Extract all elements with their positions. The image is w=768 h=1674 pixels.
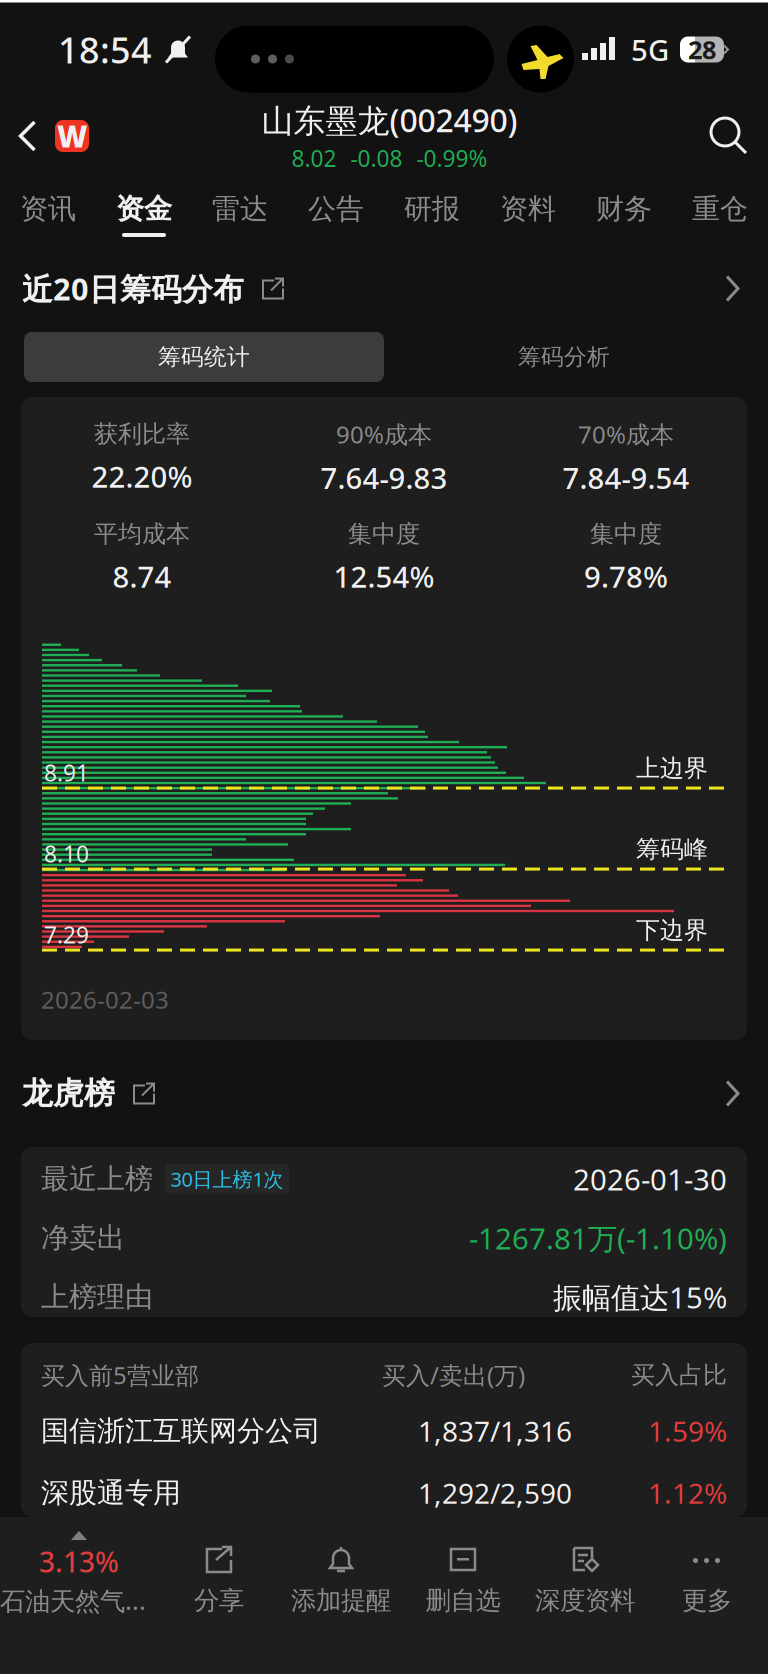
staticText: 添加提醒 [291, 1585, 391, 1616]
staticText: 公告 [308, 192, 364, 226]
staticText: 18:54 [58, 26, 152, 73]
button[interactable]: 公告 [288, 179, 384, 245]
staticText: 7.84-9.54 [562, 458, 689, 497]
staticText: 1.12% [648, 1474, 727, 1512]
button[interactable]: Back [0, 105, 55, 167]
staticText: 筹码峰 [636, 835, 708, 864]
staticText: 3.13% [39, 1543, 119, 1580]
staticText: 上边界 [636, 754, 708, 783]
button[interactable]: 财务 [576, 179, 672, 245]
button[interactable]: 资料 [480, 179, 576, 245]
staticText: 7.64-9.83 [320, 458, 447, 497]
staticText: 振幅值达15% [553, 1277, 727, 1316]
button[interactable]: 更多 [646, 1517, 768, 1674]
staticText: 资料 [500, 192, 556, 226]
staticText: 筹码分析 [518, 343, 610, 371]
staticText: 资金 [116, 192, 172, 226]
staticText: 删自选 [425, 1585, 500, 1616]
staticText: 筹码统计 [158, 343, 250, 371]
staticText: 1,292/2,590 [418, 1474, 572, 1512]
button[interactable]: 筹码统计 [24, 332, 384, 382]
button[interactable]: 研报 [384, 179, 480, 245]
button[interactable]: 近20日筹码分布 [0, 245, 768, 332]
staticText: 最近上榜 [41, 1162, 153, 1196]
staticText: 石油天然气设备与服务 [0, 1583, 158, 1617]
staticText: 1,837/1,316 [418, 1412, 572, 1450]
staticText: 深股通专用 [41, 1476, 181, 1510]
staticText: 买入/卖出(万) [382, 1359, 525, 1391]
staticText: 70%成本 [578, 418, 674, 450]
button[interactable]: Watchlist [55, 120, 89, 152]
staticText: -0.08 [350, 143, 402, 173]
staticText: 7.29 [44, 920, 89, 950]
staticText: 净卖出 [41, 1221, 125, 1255]
staticText: 90%成本 [336, 418, 432, 450]
staticText: 平均成本 [94, 519, 190, 549]
button[interactable]: 雷达 [192, 179, 288, 245]
staticText: 30日上榜1次 [170, 1166, 283, 1192]
staticText: 28 [688, 33, 716, 66]
staticText: 集中度 [348, 519, 420, 549]
staticText: 5G [631, 30, 669, 69]
staticText: 研报 [404, 192, 460, 226]
staticText: 买入占比 [631, 1360, 727, 1390]
staticText: 财务 [596, 192, 652, 226]
staticText: -1267.81万(-1.10%) [469, 1218, 727, 1257]
staticText: 8.91 [44, 758, 89, 788]
staticText: 近20日筹码分布 [22, 268, 244, 309]
staticText: 8.10 [44, 839, 89, 869]
staticText: 获利比率 [94, 419, 190, 449]
staticText: 国信浙江互联网分公司 [41, 1414, 321, 1448]
staticText: 22.20% [91, 457, 192, 496]
staticText: 重仓 [692, 192, 748, 226]
button[interactable]: Sector [0, 1517, 158, 1674]
staticText: 8.02 [291, 143, 336, 173]
button[interactable]: 重仓 [672, 179, 768, 245]
button[interactable]: 添加提醒 [280, 1517, 402, 1674]
staticText: 山东墨龙(002490) [261, 99, 517, 141]
staticText: 1.59% [648, 1412, 727, 1450]
staticText: 12.54% [333, 557, 434, 596]
staticText: 资讯 [20, 192, 76, 226]
staticText: 2026-01-30 [573, 1159, 727, 1198]
staticText: 深度资料 [535, 1585, 635, 1616]
staticText: 更多 [682, 1585, 732, 1616]
button[interactable]: 筹码分析 [384, 332, 744, 382]
button[interactable]: 资讯 [0, 179, 96, 245]
staticText: 2026-02-03 [41, 984, 169, 1015]
staticText: 下边界 [636, 916, 708, 945]
staticText: 雷达 [212, 192, 268, 226]
staticText: 分享 [194, 1585, 244, 1616]
button[interactable]: 删自选 [402, 1517, 524, 1674]
staticText: 9.78% [584, 557, 668, 596]
staticText: -0.99% [416, 143, 487, 173]
staticText: 上榜理由 [41, 1280, 153, 1314]
staticText: 集中度 [590, 519, 662, 549]
staticText: 8.74 [112, 557, 171, 596]
button[interactable]: 深度资料 [524, 1517, 646, 1674]
button[interactable]: 资金 [96, 179, 192, 245]
button[interactable]: Search [690, 105, 768, 167]
staticText: 买入前5营业部 [41, 1359, 199, 1391]
staticText: 龙虎榜 [22, 1075, 115, 1112]
button[interactable]: 龙虎榜 [0, 1040, 768, 1147]
staticText: W [57, 116, 87, 155]
button[interactable]: 分享 [158, 1517, 280, 1674]
